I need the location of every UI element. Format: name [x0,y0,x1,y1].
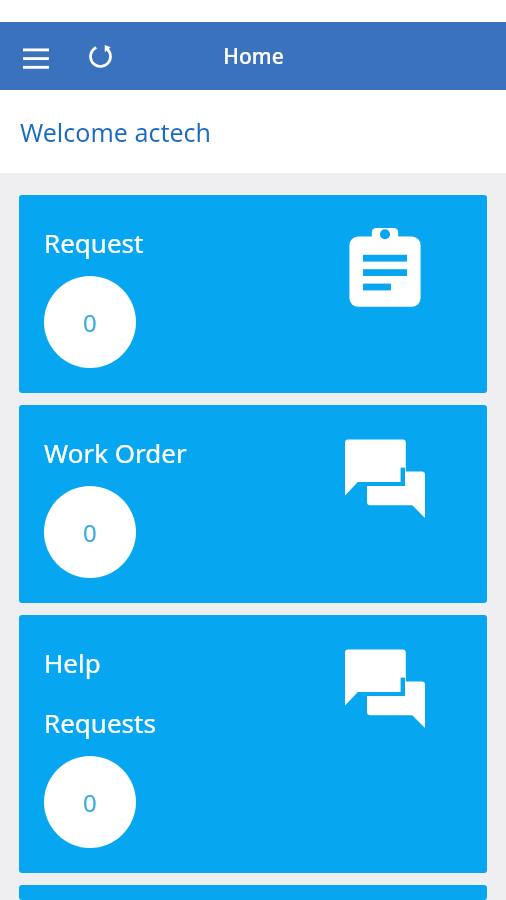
staticText: 0 [83,306,97,339]
staticText: Home [223,42,284,71]
staticText: 0 [83,516,97,549]
button[interactable] [19,885,487,900]
staticText: 0 [83,786,97,819]
button[interactable]: Refresh [78,34,122,78]
staticText: Request [44,225,144,260]
staticText: Help [44,645,101,680]
button[interactable]: Request [19,195,487,393]
staticText: Work Order [44,435,187,470]
button[interactable]: Work Order [19,405,487,603]
staticText: Welcome actech [20,115,212,149]
button[interactable]: Help [19,615,487,873]
button[interactable]: Open navigation menu [14,34,58,78]
staticText: Requests [44,705,156,740]
